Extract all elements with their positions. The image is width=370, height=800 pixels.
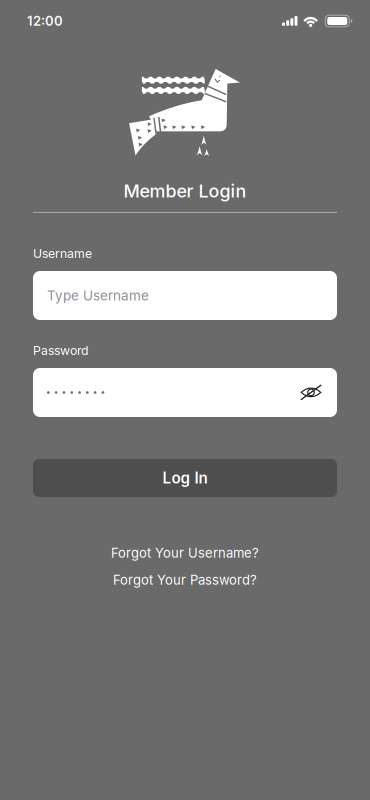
staticText: Log In [162, 469, 207, 487]
button[interactable]: Forgot Your Username? [111, 545, 259, 561]
button[interactable]: Forgot Your Password? [113, 572, 257, 588]
staticText: Username [33, 246, 92, 261]
staticText: 12:00 [27, 13, 63, 29]
button[interactable]: Log In [33, 459, 337, 497]
staticText: Forgot Your Password? [113, 572, 257, 588]
staticText: Password [33, 343, 89, 358]
staticText: Forgot Your Username? [111, 545, 259, 561]
staticText: Member Login [123, 180, 246, 202]
staticText: Type Username [47, 287, 149, 304]
